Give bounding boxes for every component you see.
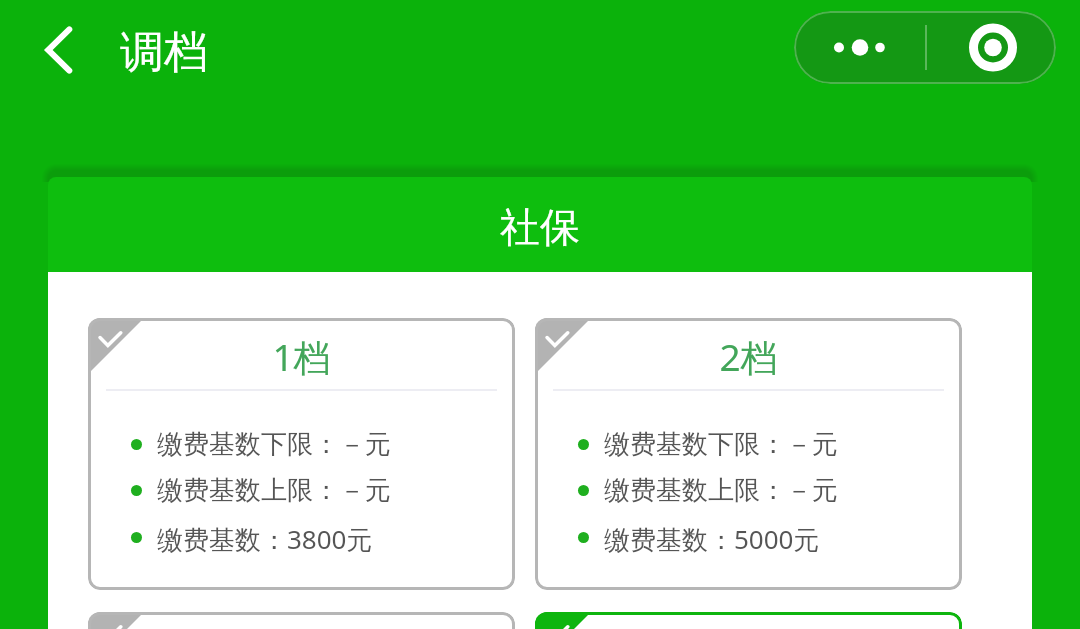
button[interactable]: 2档 bbox=[535, 318, 962, 590]
button[interactable]: 1档 bbox=[88, 318, 515, 590]
staticText: 1档 bbox=[88, 331, 515, 382]
button[interactable]: More options bbox=[802, 11, 918, 84]
button[interactable]: 社保 bbox=[48, 177, 1032, 272]
staticText: 2档 bbox=[535, 331, 962, 382]
button[interactable]: 4档 bbox=[535, 612, 962, 629]
staticText: 社保 bbox=[500, 202, 580, 252]
staticText: 3档 bbox=[88, 625, 515, 629]
button[interactable]: 3档 bbox=[88, 612, 515, 629]
button[interactable]: Back bbox=[26, 18, 90, 82]
staticText: 4档 bbox=[535, 625, 962, 629]
staticText: 缴费基数下限：－元 bbox=[604, 428, 838, 460]
staticText: 缴费基数：3800元 bbox=[157, 521, 373, 553]
staticText: 缴费基数上限：－元 bbox=[604, 474, 838, 506]
staticText: 缴费基数上限：－元 bbox=[157, 474, 391, 506]
staticText: 缴费基数：5000元 bbox=[604, 521, 820, 553]
staticText: 调档 bbox=[120, 25, 208, 80]
button[interactable]: Close mini program bbox=[934, 11, 1056, 84]
staticText: 缴费基数下限：－元 bbox=[157, 428, 391, 460]
button[interactable]: 调档 bbox=[120, 25, 208, 80]
